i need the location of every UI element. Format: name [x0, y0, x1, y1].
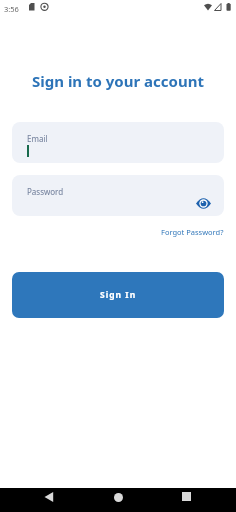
button[interactable]: [196, 198, 211, 209]
button[interactable]: Forgot Password?: [161, 227, 224, 237]
staticText: 3:56: [4, 4, 19, 14]
button[interactable]: Password: [12, 175, 224, 216]
button[interactable]: [114, 493, 123, 502]
staticText: Email: [27, 133, 48, 144]
button[interactable]: Email: [12, 122, 224, 163]
staticText: Sign in to your account: [32, 71, 204, 91]
button[interactable]: Sign In: [12, 272, 224, 318]
staticText: Password: [27, 186, 64, 197]
button[interactable]: [44, 492, 54, 502]
staticText: Sign In: [100, 289, 137, 301]
